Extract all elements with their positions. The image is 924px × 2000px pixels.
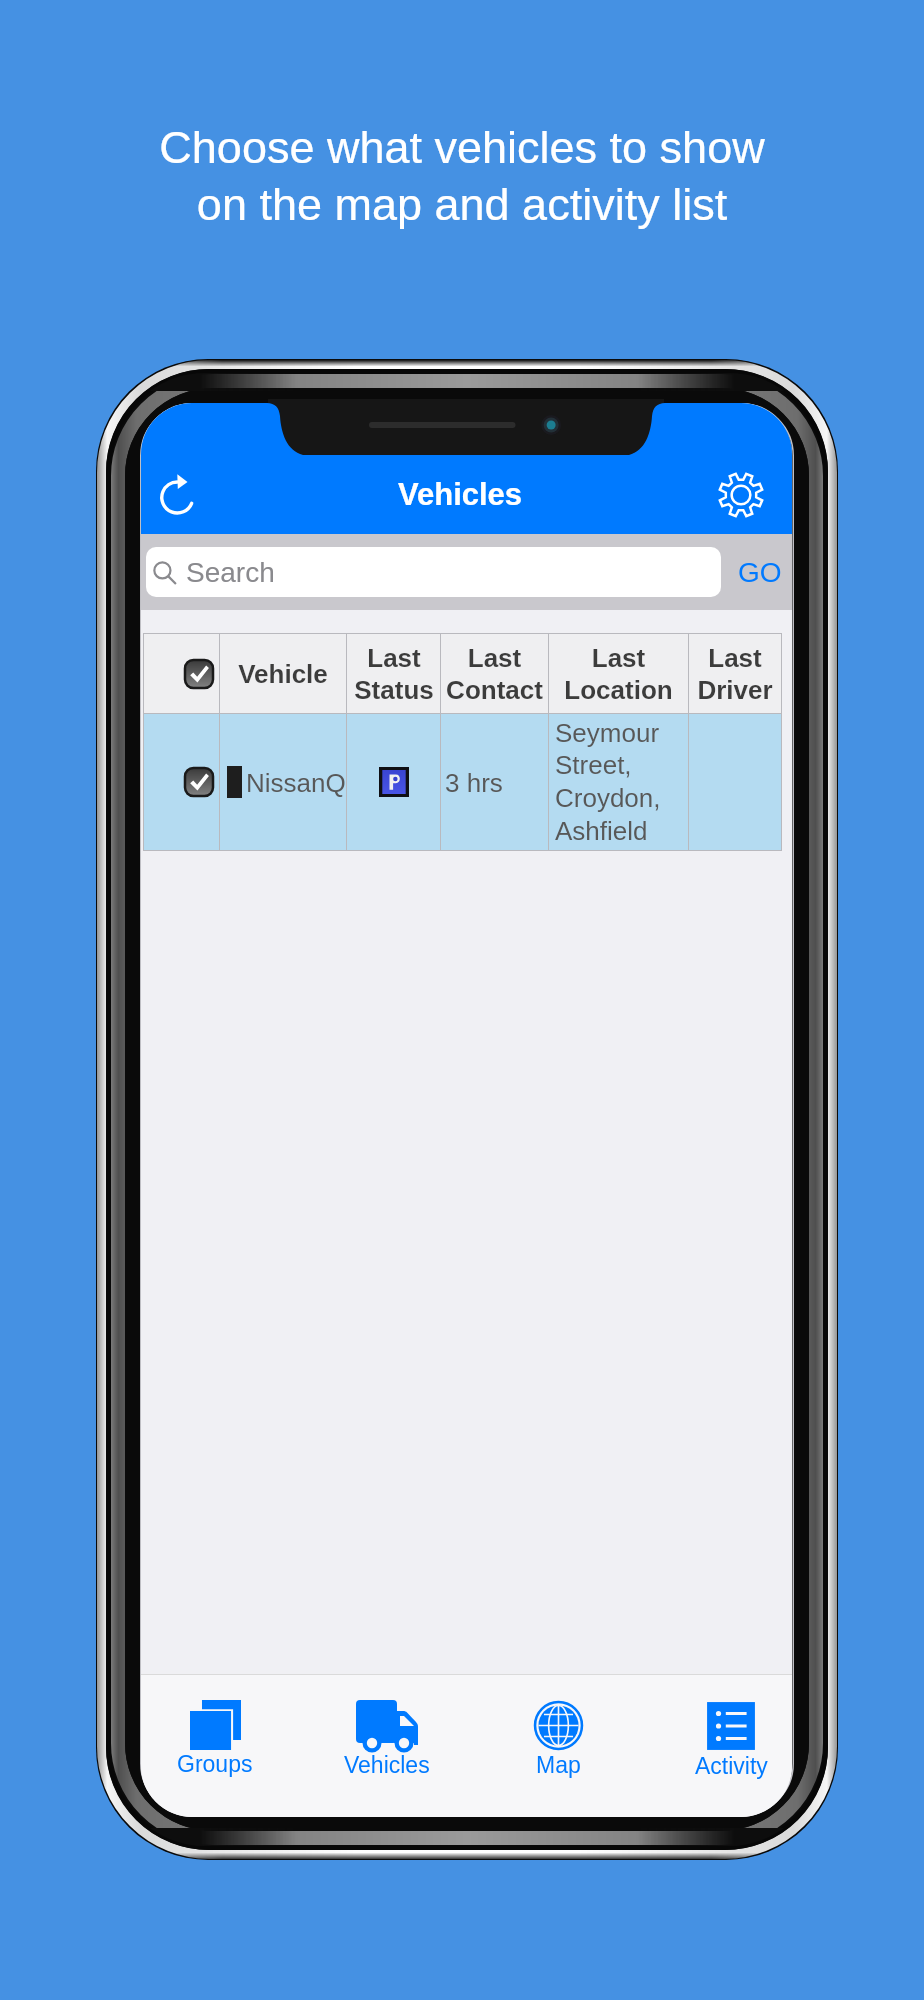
staticText: NissanQ — [246, 768, 346, 797]
button[interactable]: GO — [721, 547, 792, 597]
staticText: Vehicles — [398, 477, 523, 512]
button[interactable]: Settings — [711, 455, 771, 534]
staticText: 3 hrs — [445, 768, 503, 797]
staticText: Last Contact — [446, 643, 543, 705]
button[interactable]: Refresh — [147, 455, 207, 534]
button[interactable]: Search — [146, 547, 721, 597]
staticText: Map — [536, 1752, 581, 1778]
staticText: Activity — [695, 1753, 768, 1779]
staticText: Last Location — [564, 643, 673, 705]
staticText: Last Status — [354, 643, 434, 705]
staticText: GO — [738, 557, 782, 588]
button[interactable]: NissanQ — [143, 714, 782, 850]
staticText: Groups — [177, 1751, 253, 1777]
button[interactable]: Vehicles — [315, 1675, 459, 1817]
staticText: Search — [186, 557, 275, 588]
button[interactable]: Map — [486, 1675, 630, 1817]
staticText: Vehicle — [238, 659, 328, 688]
staticText: Last Driver — [697, 643, 773, 705]
staticText: Choose what vehicles to show on the map … — [159, 122, 765, 229]
staticText: Vehicles — [344, 1752, 430, 1778]
button[interactable]: Activity — [659, 1675, 792, 1817]
button[interactable]: Groups — [143, 1675, 287, 1817]
staticText: Seymour Street, Croydon, Ashfield — [555, 718, 661, 846]
